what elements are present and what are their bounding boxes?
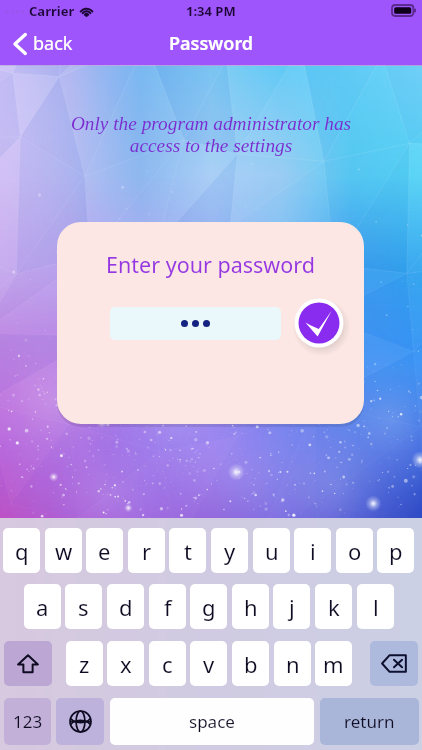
staticText: p: [389, 536, 403, 566]
button[interactable]: r: [128, 528, 165, 573]
button[interactable]: Confirm password: [292, 296, 348, 352]
button[interactable]: u: [253, 528, 290, 573]
button[interactable]: t: [169, 528, 206, 573]
staticText: 123: [13, 710, 43, 733]
staticText: e: [98, 536, 111, 566]
staticText: n: [286, 649, 300, 679]
staticText: Carrier: [29, 2, 75, 20]
staticText: q: [15, 536, 29, 566]
button[interactable]: a: [24, 584, 61, 629]
staticText: return: [344, 710, 395, 733]
button[interactable]: b: [232, 641, 269, 686]
button[interactable]: e: [86, 528, 123, 573]
staticText: x: [120, 649, 132, 679]
button[interactable]: g: [190, 584, 227, 629]
staticText: 1:34 PM: [186, 2, 236, 20]
staticText: Password: [169, 31, 254, 56]
button[interactable]: x: [107, 641, 144, 686]
button[interactable]: z: [66, 641, 103, 686]
button[interactable]: i: [294, 528, 331, 573]
staticText: f: [164, 592, 172, 622]
button[interactable]: [110, 307, 281, 340]
staticText: back: [33, 31, 73, 56]
button[interactable]: h: [232, 584, 269, 629]
staticText: b: [244, 649, 258, 679]
staticText: d: [119, 592, 133, 622]
staticText: space: [189, 710, 235, 733]
staticText: a: [36, 592, 49, 622]
staticText: l: [373, 592, 379, 622]
staticText: g: [202, 592, 216, 622]
button[interactable]: f: [149, 584, 186, 629]
button[interactable]: s: [65, 584, 102, 629]
button[interactable]: j: [273, 584, 310, 629]
staticText: i: [310, 536, 316, 566]
staticText: s: [78, 592, 89, 622]
staticText: j: [289, 592, 295, 622]
staticText: h: [244, 592, 258, 622]
staticText: m: [323, 649, 344, 679]
button[interactable]: p: [377, 528, 414, 573]
button[interactable]: c: [149, 641, 186, 686]
button[interactable]: v: [190, 641, 227, 686]
button[interactable]: Shift: [4, 641, 52, 686]
button[interactable]: o: [336, 528, 373, 573]
button[interactable]: l: [357, 584, 394, 629]
staticText: Enter your password: [57, 250, 364, 279]
button[interactable]: return: [320, 698, 419, 745]
button[interactable]: back: [0, 25, 87, 62]
staticText: t: [184, 536, 192, 566]
staticText: u: [265, 536, 279, 566]
staticText: k: [328, 592, 340, 622]
button[interactable]: m: [315, 641, 352, 686]
button[interactable]: w: [45, 528, 82, 573]
staticText: r: [142, 536, 152, 566]
button[interactable]: k: [315, 584, 352, 629]
staticText: w: [55, 536, 73, 566]
staticText: c: [162, 649, 173, 679]
button[interactable]: Change keyboard: [56, 698, 104, 745]
staticText: v: [203, 649, 215, 679]
staticText: Only the program administrator has acces…: [0, 113, 422, 156]
button[interactable]: d: [107, 584, 144, 629]
staticText: z: [79, 649, 90, 679]
button[interactable]: 123: [4, 698, 51, 745]
staticText: y: [224, 536, 236, 566]
staticText: o: [348, 536, 362, 566]
button[interactable]: Backspace: [370, 641, 418, 686]
button[interactable]: space: [110, 698, 314, 745]
button[interactable]: y: [211, 528, 248, 573]
button[interactable]: n: [274, 641, 311, 686]
button[interactable]: q: [3, 528, 40, 573]
